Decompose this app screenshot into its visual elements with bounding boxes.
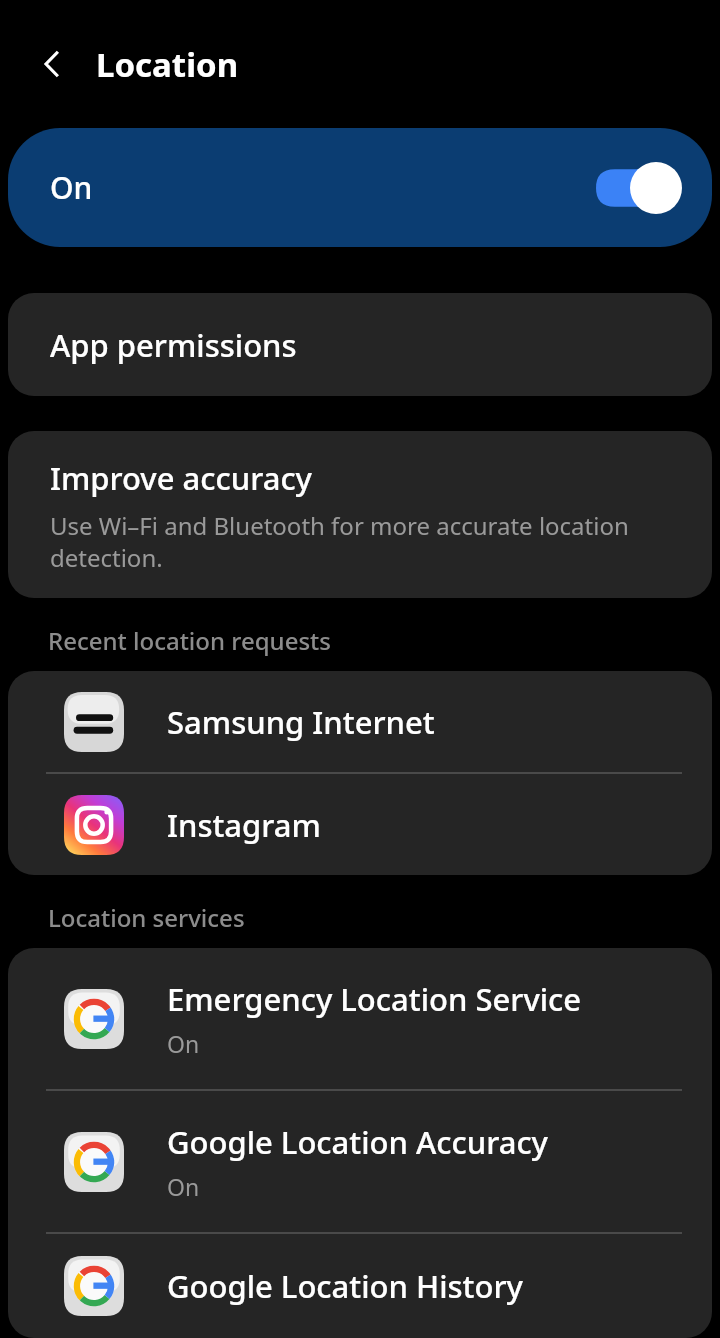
- button[interactable]: Emergency Location Service: [8, 948, 712, 1089]
- staticText: Use Wi–Fi and Bluetooth for more accurat…: [50, 509, 672, 574]
- staticText: On: [167, 1171, 200, 1202]
- button[interactable]: Back: [26, 38, 78, 90]
- staticText: On: [167, 1028, 200, 1059]
- button[interactable]: Instagram: [8, 774, 712, 875]
- staticText: Location services: [48, 901, 245, 934]
- staticText: Recent location requests: [48, 624, 331, 657]
- staticText: Location: [96, 42, 239, 87]
- button[interactable]: On: [8, 128, 712, 247]
- staticText: On: [50, 167, 93, 208]
- staticText: Emergency Location Service: [167, 978, 582, 1020]
- button[interactable]: Google Location Accuracy: [8, 1091, 712, 1232]
- staticText: Instagram: [167, 804, 321, 846]
- button[interactable]: App permissions: [8, 293, 712, 396]
- staticText: App permissions: [50, 324, 297, 366]
- staticText: Improve accuracy: [50, 457, 312, 499]
- staticText: Samsung Internet: [167, 701, 435, 743]
- button[interactable]: Improve accuracy: [8, 431, 712, 598]
- staticText: Google Location History: [167, 1265, 523, 1307]
- button[interactable]: Google Location History: [8, 1234, 712, 1338]
- button[interactable]: Samsung Internet: [8, 671, 712, 772]
- staticText: Google Location Accuracy: [167, 1121, 548, 1163]
